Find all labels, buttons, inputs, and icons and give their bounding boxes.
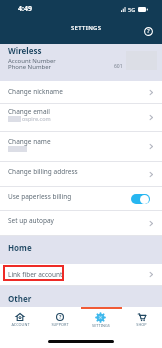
staticText: Account Number bbox=[8, 57, 56, 65]
staticText: ? bbox=[147, 27, 150, 35]
staticText: ospire.com bbox=[22, 115, 51, 122]
staticText: 4:49 bbox=[18, 4, 32, 14]
staticText: Phone Number bbox=[8, 63, 52, 71]
button[interactable]: Change email bbox=[0, 104, 162, 131]
button[interactable]: Set up autopay bbox=[0, 211, 162, 235]
button[interactable]: SETTINGS bbox=[80, 307, 121, 339]
button[interactable]: Change billing address bbox=[0, 162, 162, 186]
staticText: Home bbox=[8, 242, 32, 253]
staticText: SUPPORT bbox=[51, 322, 69, 327]
staticText: ? bbox=[59, 314, 62, 321]
staticText: Wireless bbox=[8, 45, 42, 56]
staticText: Change nickname bbox=[8, 87, 63, 96]
staticText: 601 bbox=[114, 63, 123, 70]
staticText: Link fiber account bbox=[8, 270, 63, 279]
staticText: SHOP bbox=[136, 322, 147, 327]
staticText: ACCOUNT bbox=[11, 322, 30, 327]
staticText: Change billing address bbox=[8, 167, 78, 176]
staticText: 5G bbox=[128, 6, 136, 13]
button[interactable]: Use paperless billing bbox=[0, 187, 162, 210]
staticText: Other bbox=[8, 293, 32, 304]
button[interactable]: Change nickname bbox=[0, 81, 162, 103]
button[interactable]: ? bbox=[40, 307, 80, 339]
staticText: Use paperless billing bbox=[8, 192, 72, 201]
staticText: Change name bbox=[8, 137, 51, 146]
button[interactable]: Help bbox=[141, 24, 155, 38]
staticText: SETTINGS bbox=[92, 323, 110, 328]
button[interactable]: ACCOUNT bbox=[0, 307, 40, 339]
staticText: Change email bbox=[8, 107, 50, 116]
staticText: Set up autopay bbox=[8, 216, 54, 225]
staticText: SETTINGS bbox=[71, 24, 102, 32]
button[interactable]: Link fiber account bbox=[0, 264, 162, 285]
button[interactable]: SHOP bbox=[121, 307, 162, 339]
button[interactable]: Change name bbox=[0, 132, 162, 161]
